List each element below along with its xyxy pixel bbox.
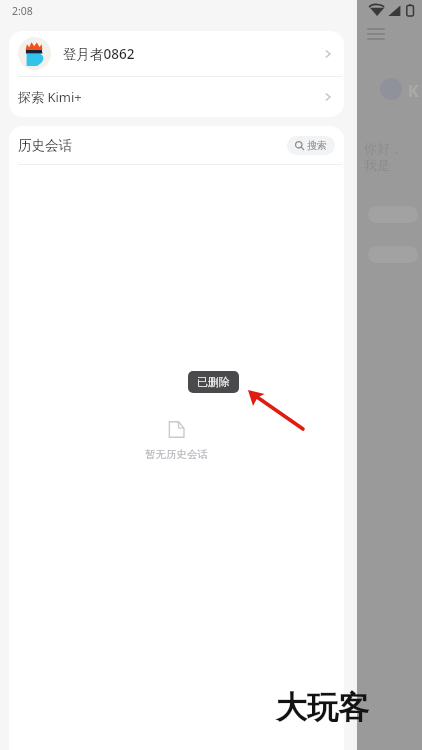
staticText: 历史会话 xyxy=(18,137,72,154)
button[interactable]: Profile avatar xyxy=(9,31,344,76)
staticText: 2:08 xyxy=(12,4,33,18)
button[interactable]: 搜索 xyxy=(287,136,335,155)
other: No conversations xyxy=(168,421,185,438)
staticText: 已删除 xyxy=(197,375,230,389)
other: Profile avatar xyxy=(18,37,51,70)
staticText: 搜索 xyxy=(307,139,327,152)
staticText: 登月者0862 xyxy=(63,45,135,63)
button[interactable]: 探索 Kimi+ xyxy=(9,77,344,117)
staticText: 你好， 我是 xyxy=(364,140,403,174)
other: Menu xyxy=(368,29,384,40)
staticText: 探索 Kimi+ xyxy=(18,88,82,106)
staticText: K xyxy=(408,80,419,102)
staticText: 暂无历史会话 xyxy=(145,448,208,461)
staticText: 大玩客 xyxy=(276,688,369,727)
